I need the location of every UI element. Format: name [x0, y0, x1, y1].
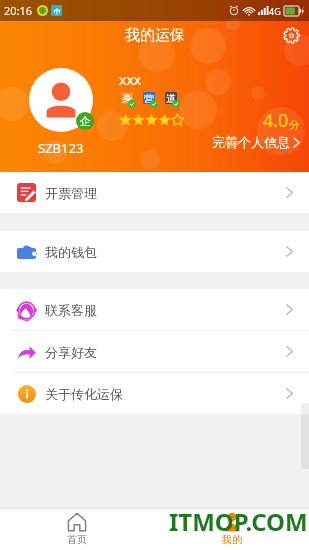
staticText: 道	[166, 92, 176, 104]
staticText: 我的运保	[125, 26, 185, 45]
button[interactable]: Settings	[280, 24, 302, 46]
staticText: 开票管理	[45, 185, 97, 201]
staticText: 首页	[67, 533, 87, 546]
staticText: 分	[289, 118, 300, 132]
staticText: ITMOP.COM	[169, 505, 308, 538]
staticText: 4G	[269, 5, 281, 17]
staticText: 企	[80, 114, 91, 128]
staticText: 完善个人信息	[212, 134, 290, 150]
staticText: 营	[144, 92, 154, 104]
button[interactable]: 关于传化运保	[0, 373, 309, 414]
staticText: 分享好友	[45, 344, 97, 360]
staticText: xxx	[119, 70, 142, 89]
staticText: SZB123	[38, 139, 84, 157]
staticText: 4.0	[263, 108, 289, 133]
button[interactable]: 完善个人信息	[212, 134, 300, 150]
button[interactable]: 我的	[154, 509, 309, 550]
staticText: 身	[122, 92, 132, 104]
button[interactable]: 首页	[0, 509, 154, 550]
staticText: 关于传化运保	[45, 386, 123, 402]
staticText: 20:16	[4, 3, 33, 18]
staticText: 联系客服	[45, 302, 97, 318]
button[interactable]: 我的钱包	[0, 231, 309, 272]
button[interactable]: 联系客服	[0, 289, 309, 330]
staticText: 我的	[222, 533, 242, 546]
staticText: 我的钱包	[45, 244, 97, 260]
button[interactable]: 分享好友	[0, 331, 309, 372]
button[interactable]: 开票管理	[0, 172, 309, 213]
